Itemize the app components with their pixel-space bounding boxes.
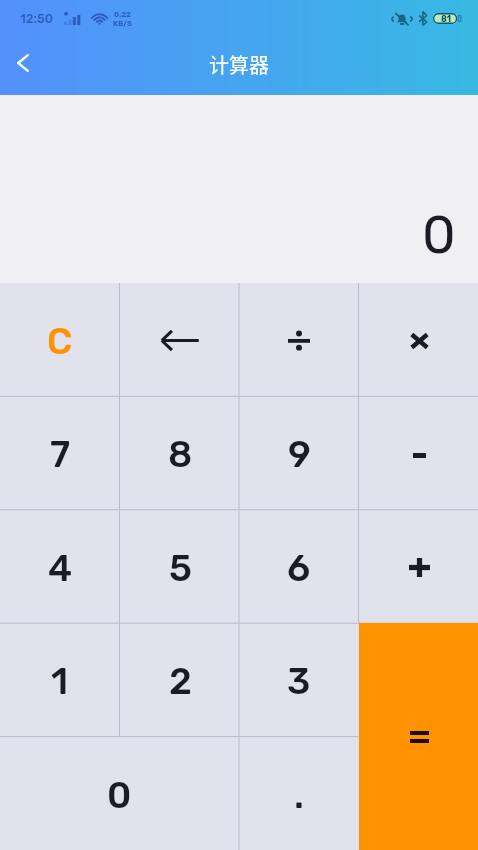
button[interactable]: Multiply (359, 283, 478, 396)
button[interactable]: 4 (0, 510, 120, 623)
staticText: 12:50 (20, 11, 53, 26)
staticText: 5 (169, 546, 192, 590)
button[interactable]: 0 (0, 737, 239, 850)
button[interactable]: 3 (239, 623, 359, 736)
button[interactable]: Equals (359, 623, 478, 850)
button[interactable]: 8 (120, 396, 240, 509)
button[interactable]: Minus (359, 396, 478, 509)
button[interactable]: 1 (0, 623, 120, 736)
button[interactable]: Backspace (120, 283, 240, 396)
staticText: 2 (169, 659, 192, 703)
staticText: 0.22 (114, 10, 131, 19)
staticText: 0 (422, 203, 456, 266)
staticText: 4 (48, 546, 73, 590)
button[interactable]: 9 (239, 396, 359, 509)
button[interactable]: 7 (0, 396, 120, 509)
staticText: 6 (287, 546, 311, 590)
button[interactable]: Divide (239, 283, 359, 396)
staticText: 计算器 (209, 50, 269, 79)
staticText: 9 (288, 432, 311, 476)
staticText: 81 (441, 14, 451, 24)
staticText: C (47, 319, 73, 363)
button[interactable]: 6 (239, 510, 359, 623)
button[interactable]: Back (0, 40, 46, 86)
button[interactable]: 5 (120, 510, 240, 623)
button[interactable]: . (239, 737, 359, 850)
staticText: . (294, 773, 304, 817)
staticText: 3 (287, 659, 311, 703)
button[interactable]: Plus (359, 510, 478, 623)
button[interactable]: 2 (120, 623, 240, 736)
staticText: 0 (107, 773, 132, 817)
staticText: 7 (50, 432, 71, 476)
staticText: 8 (168, 432, 193, 476)
button[interactable]: C (0, 283, 120, 396)
staticText: 1 (51, 659, 69, 703)
staticText: KB/S (113, 19, 132, 28)
